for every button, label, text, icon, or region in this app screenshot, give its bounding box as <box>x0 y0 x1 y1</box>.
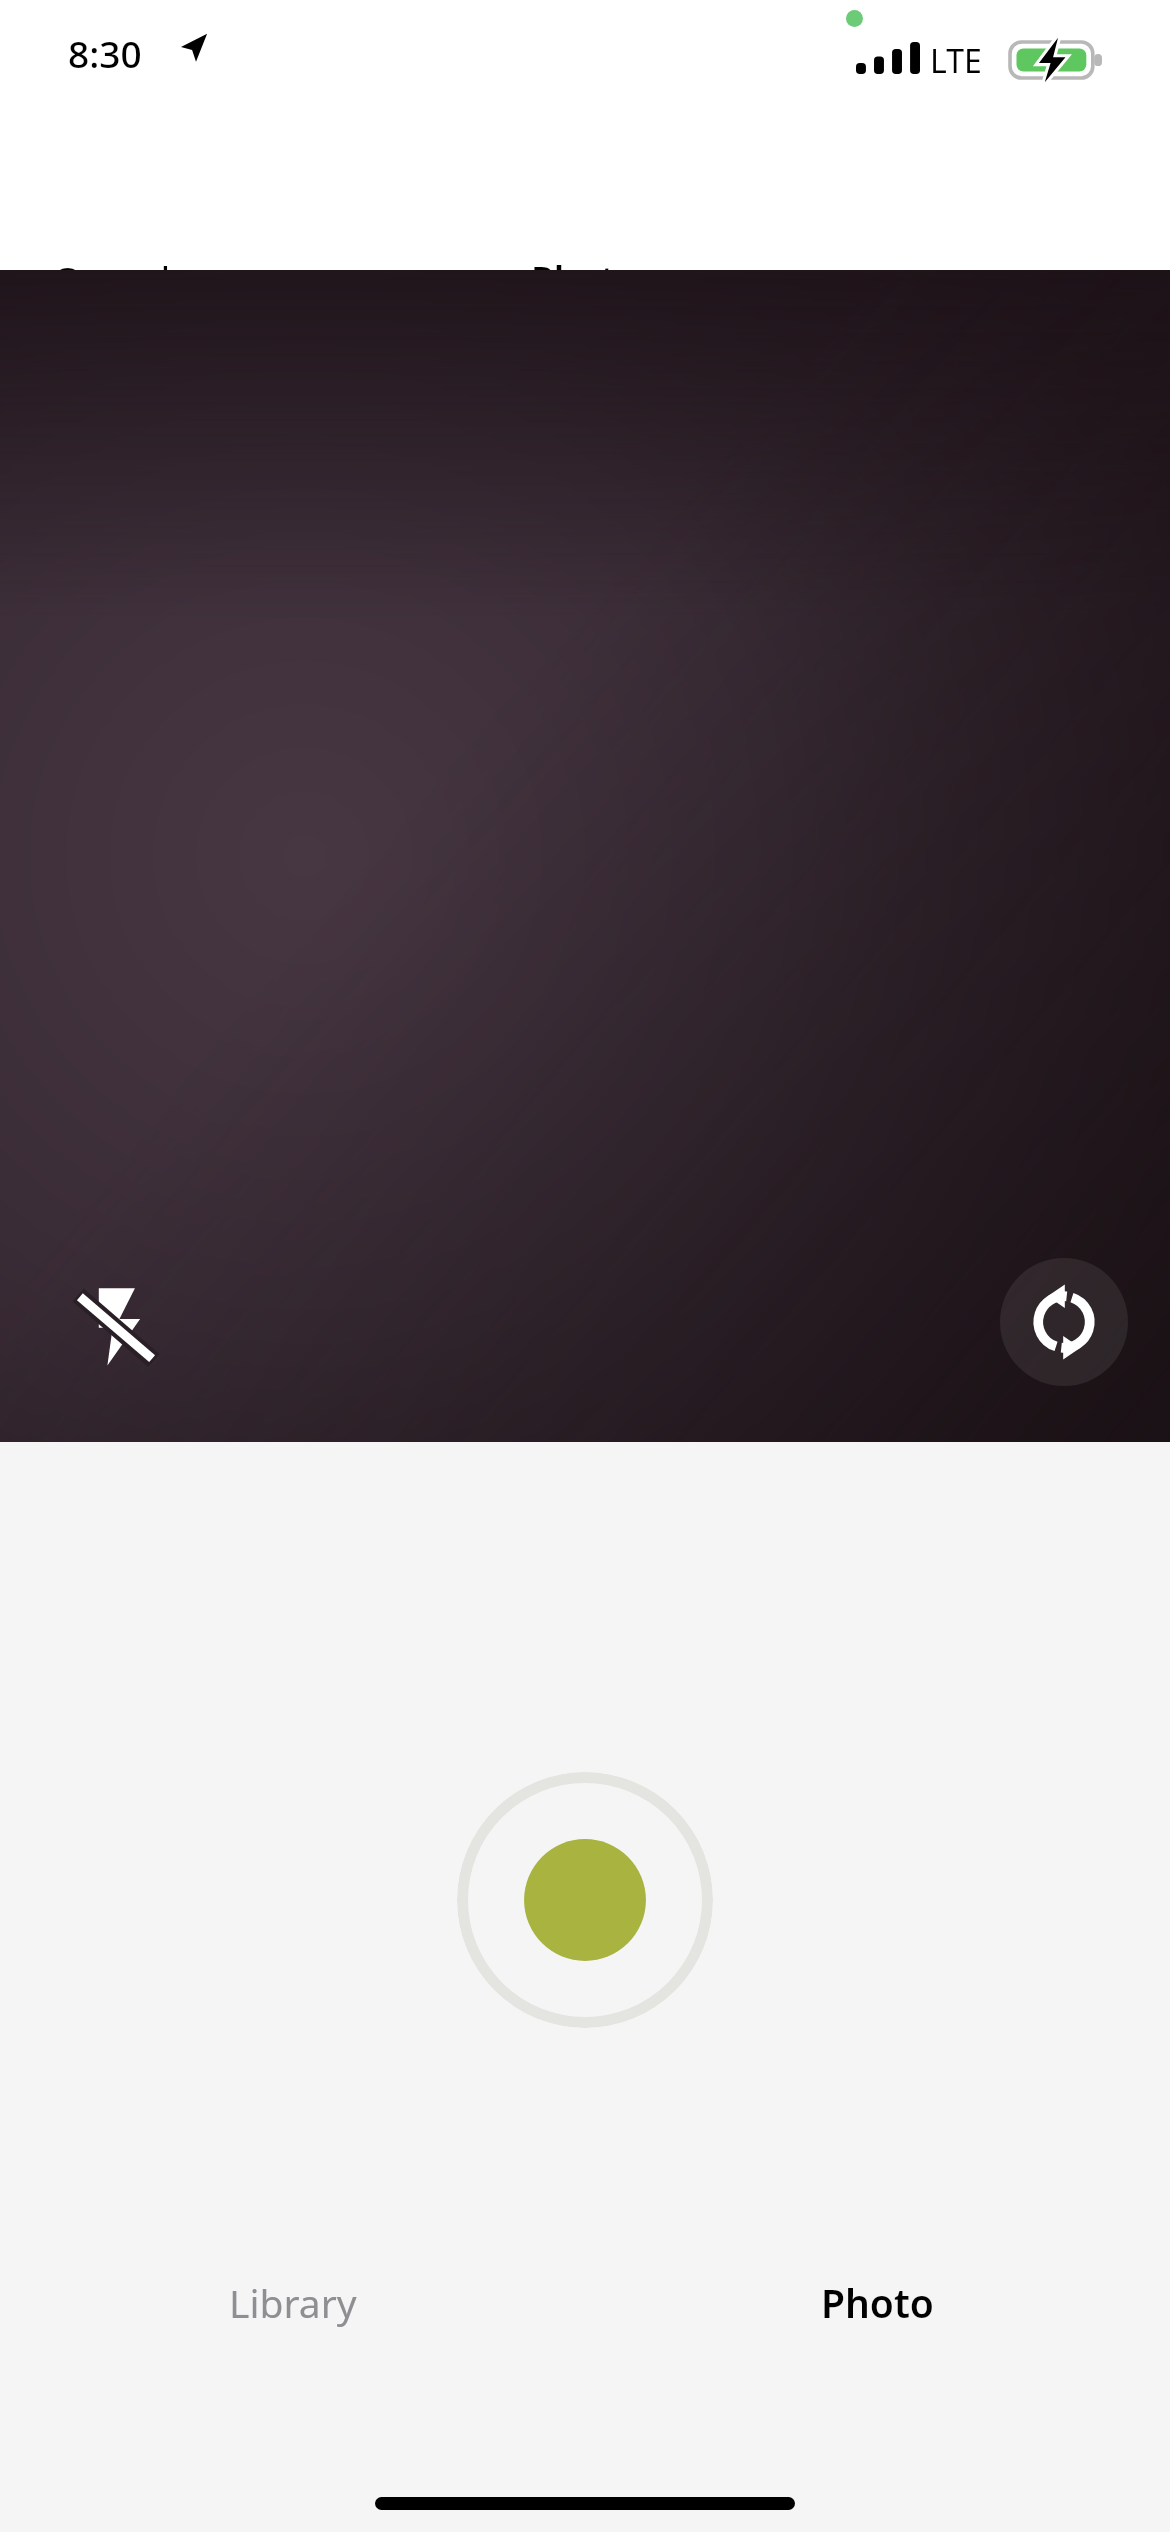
button[interactable]: Photo <box>511 242 659 316</box>
button[interactable]: Take photo <box>457 1772 713 2028</box>
staticText: Photo <box>531 254 639 304</box>
button[interactable]: Flash off <box>52 1262 180 1390</box>
button[interactable]: Library <box>0 2254 585 2351</box>
staticText: Library <box>229 2276 357 2329</box>
staticText: 8:30 <box>68 28 142 78</box>
staticText: Photo <box>821 2276 934 2329</box>
button[interactable]: Switch camera <box>1000 1258 1128 1386</box>
button[interactable]: Photo <box>585 2254 1170 2351</box>
staticText: LTE <box>930 39 982 83</box>
button[interactable]: Cancel <box>30 240 193 320</box>
staticText: Cancel <box>52 254 171 306</box>
